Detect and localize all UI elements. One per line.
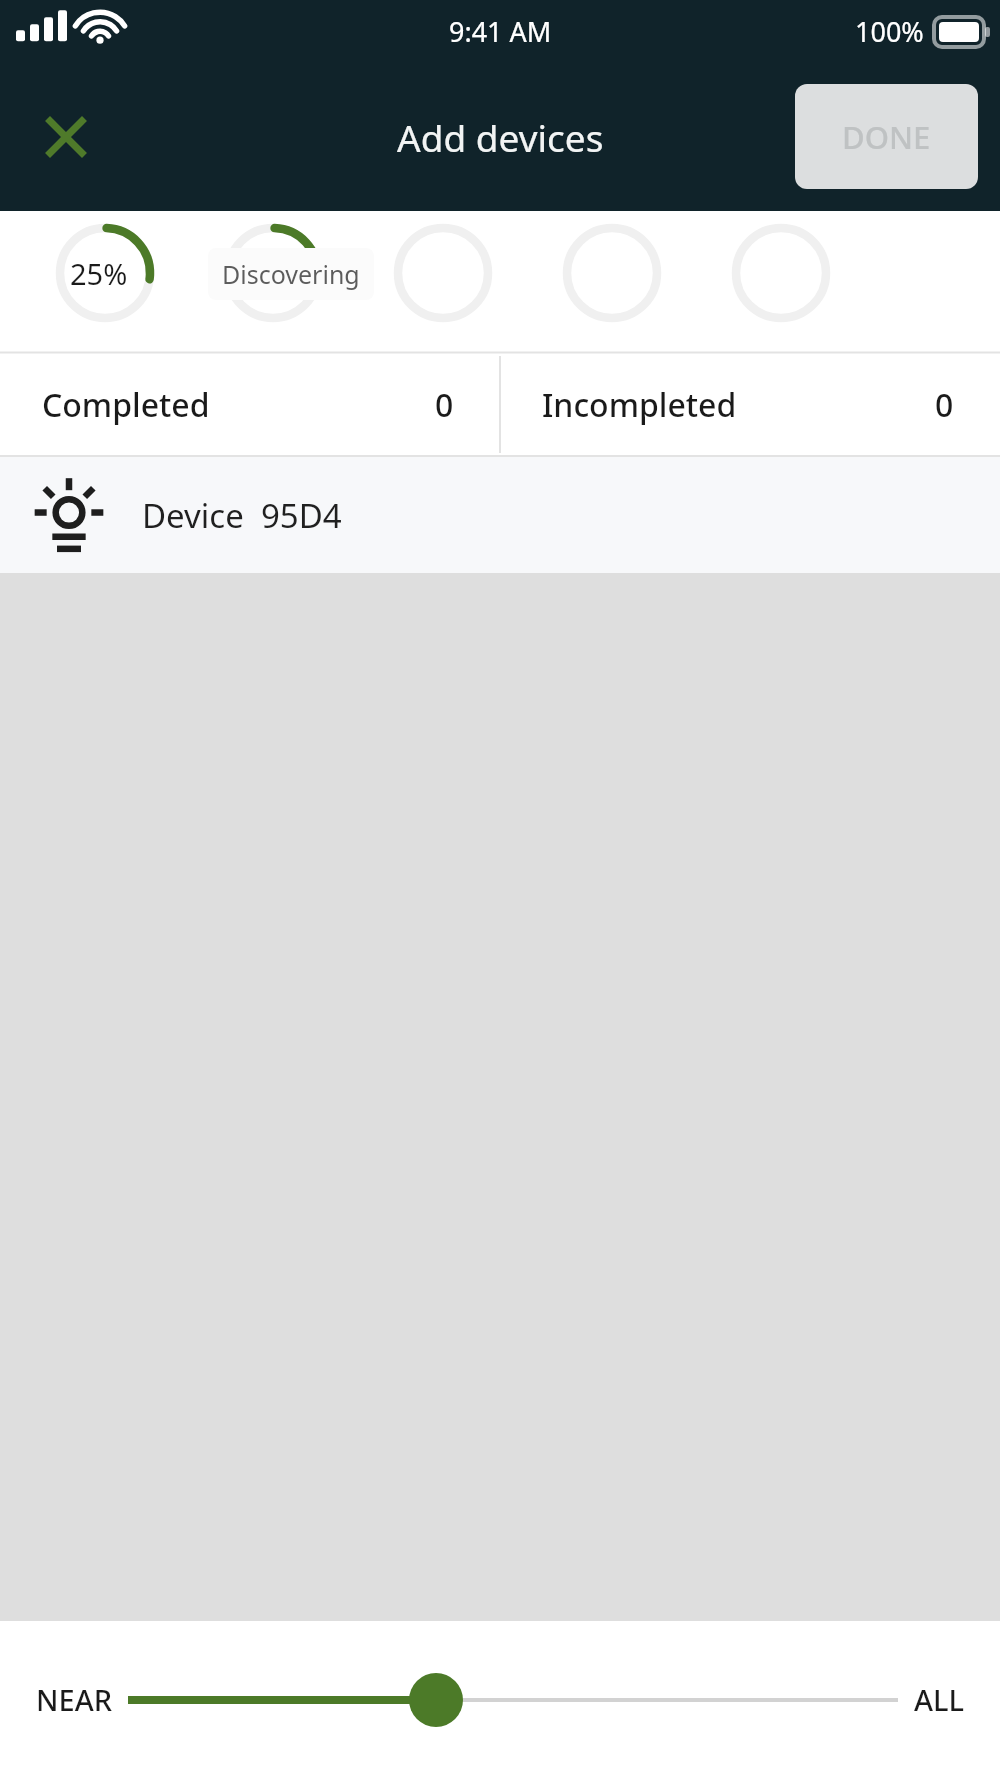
staticText: Device 95D4 <box>142 493 342 538</box>
button[interactable]: Range slider <box>128 1621 898 1778</box>
staticText: 25% <box>70 254 128 293</box>
staticText: Discovering <box>222 257 360 291</box>
button[interactable]: Close <box>28 99 104 175</box>
button[interactable]: Completed <box>0 352 500 457</box>
staticText: 0 <box>935 383 954 427</box>
staticText: NEAR <box>36 1680 112 1719</box>
button[interactable]: Device 95D4 <box>0 457 1000 573</box>
staticText: Incompleted <box>542 383 737 427</box>
button[interactable]: Incompleted <box>500 352 1000 457</box>
staticText: Add devices <box>397 112 604 162</box>
staticText: ALL <box>914 1680 964 1719</box>
staticText: 0 <box>435 383 454 427</box>
staticText: 9:41 AM <box>449 13 552 50</box>
button[interactable]: DONE <box>795 84 978 189</box>
staticText: 100% <box>855 13 924 50</box>
staticText: DONE <box>842 116 931 158</box>
staticText: Completed <box>42 383 210 427</box>
